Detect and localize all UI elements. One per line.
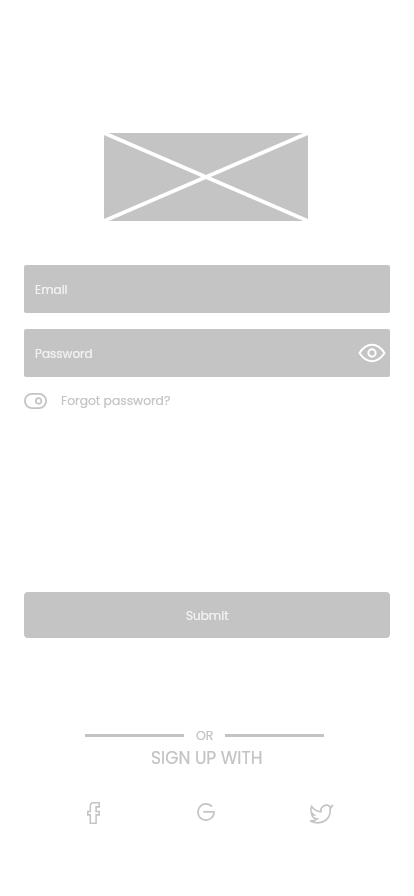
- button[interactable]: Submit: [24, 592, 390, 638]
- button[interactable]: Logo: [104, 133, 308, 221]
- button[interactable]: Sign up with Google: [189, 795, 223, 829]
- button[interactable]: Password: [24, 329, 390, 377]
- staticText: Submit: [186, 607, 229, 624]
- button[interactable]: Remember me: [24, 393, 47, 409]
- staticText: Email: [35, 281, 68, 298]
- button[interactable]: Email: [24, 265, 390, 313]
- button[interactable]: Show password: [354, 335, 390, 371]
- button[interactable]: Sign up with Facebook: [76, 796, 110, 830]
- staticText: SIGN UP WITH: [151, 746, 263, 766]
- staticText: Forgot password?: [61, 392, 171, 409]
- staticText: Password: [35, 345, 93, 362]
- staticText: OR: [196, 727, 214, 744]
- button[interactable]: Forgot password?: [61, 391, 171, 409]
- button[interactable]: Sign up with Twitter: [304, 797, 338, 831]
